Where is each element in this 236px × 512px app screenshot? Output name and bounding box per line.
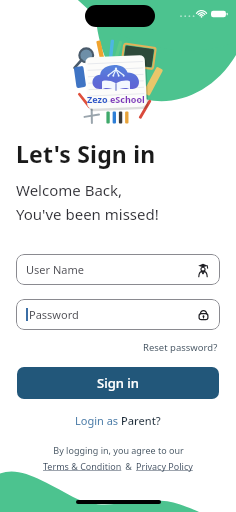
staticText: Reset password? (143, 341, 218, 354)
staticText: Let's Sign in (16, 138, 156, 169)
button[interactable]: Password (16, 299, 220, 330)
staticText: User Name (26, 262, 196, 277)
button[interactable]: Sign in (17, 367, 219, 399)
staticText: You've been missed! (16, 204, 159, 224)
button[interactable]: Reset password? (141, 340, 220, 355)
staticText: Privacy Policy (136, 460, 193, 472)
staticText: Terms & Condition (43, 460, 122, 472)
staticText: Zezo (87, 93, 110, 105)
staticText: Sign in (97, 374, 139, 392)
staticText: Login as (75, 413, 121, 428)
staticText: eSchool (110, 93, 145, 105)
staticText: Parent? (121, 413, 161, 428)
button[interactable]: User Name (16, 254, 220, 285)
button[interactable]: Terms & Condition (42, 460, 123, 472)
staticText: & (123, 460, 135, 472)
staticText: Welcome Back, (16, 180, 123, 200)
staticText: By logging in, you agree to our (53, 444, 184, 456)
button[interactable]: Login as (71, 411, 165, 430)
staticText: Password (29, 307, 197, 322)
button[interactable]: Privacy Policy (135, 460, 194, 472)
